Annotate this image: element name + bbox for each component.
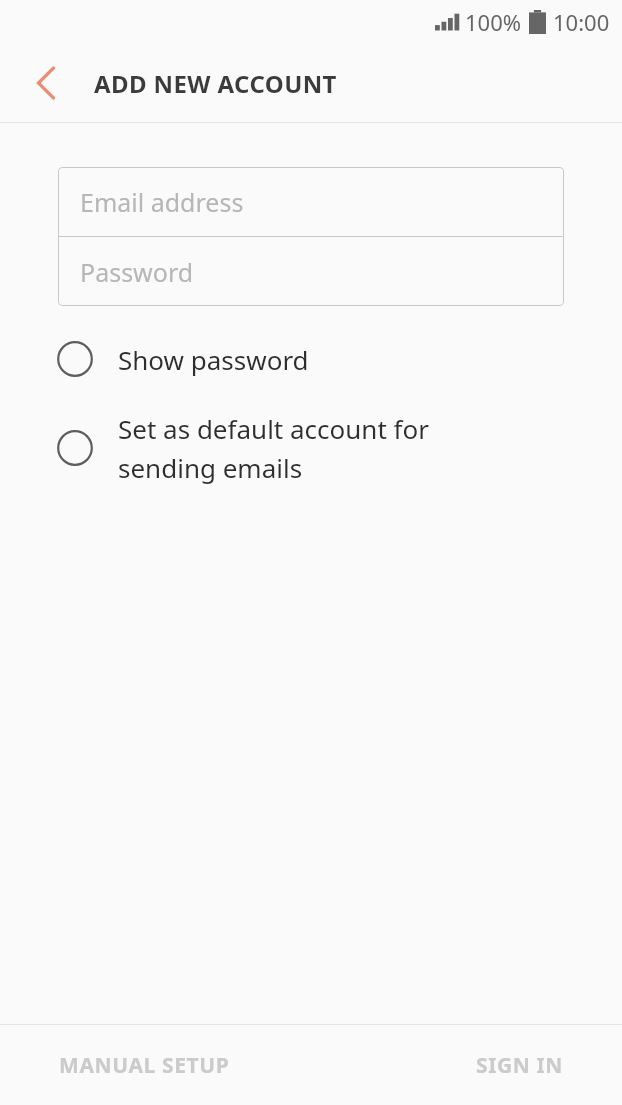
staticText: 100% bbox=[465, 7, 522, 37]
staticText: Password bbox=[80, 255, 194, 289]
button[interactable]: Back bbox=[22, 59, 70, 107]
staticText: SIGN IN bbox=[476, 1051, 563, 1080]
button[interactable]: Email address bbox=[58, 167, 564, 236]
button[interactable]: Set as default account for sending email… bbox=[0, 397, 622, 499]
button[interactable]: SIGN IN bbox=[311, 1025, 622, 1105]
staticText: Show password bbox=[118, 342, 309, 377]
button[interactable]: Password bbox=[58, 237, 564, 306]
staticText: MANUAL SETUP bbox=[59, 1051, 230, 1080]
button[interactable]: MANUAL SETUP bbox=[0, 1025, 311, 1105]
staticText: Set as default account for sending email… bbox=[118, 411, 429, 485]
button[interactable]: Show password bbox=[0, 327, 622, 391]
staticText: 10:00 bbox=[553, 7, 610, 37]
staticText: Email address bbox=[80, 185, 244, 219]
staticText: ADD NEW ACCOUNT bbox=[94, 67, 337, 100]
